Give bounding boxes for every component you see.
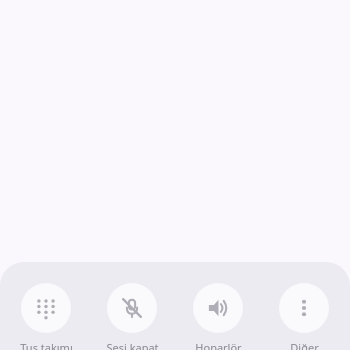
staticText: Diğer	[290, 340, 319, 350]
button[interactable]: Diğer	[264, 283, 344, 350]
button[interactable]: Sesi kapat	[92, 283, 172, 350]
button[interactable]: Tuş takımı	[6, 283, 86, 350]
staticText: Sesi kapat	[106, 340, 159, 350]
button[interactable]: Hoparlör	[178, 283, 258, 350]
staticText: Tuş takımı	[20, 340, 73, 350]
staticText: Hoparlör	[195, 340, 242, 350]
